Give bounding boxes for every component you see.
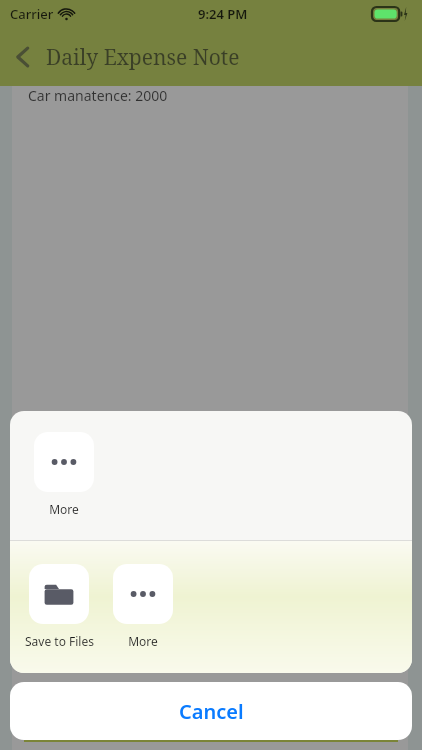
staticText: Daily Expense Note <box>46 43 240 72</box>
button[interactable]: More <box>104 564 182 649</box>
button[interactable]: More <box>25 432 103 517</box>
button[interactable]: Edit <box>24 700 398 742</box>
staticText: Save to Files <box>25 633 94 649</box>
button[interactable]: Save to Files <box>20 564 98 649</box>
staticText: Carrier <box>10 5 54 23</box>
staticText: Cancel <box>179 698 244 725</box>
button[interactable]: Cancel <box>10 682 412 740</box>
staticText: Edit <box>191 706 231 736</box>
staticText: 9:24 PM <box>198 5 248 23</box>
staticText: Car manatence: 2000 <box>28 86 168 105</box>
staticText: More <box>128 633 158 649</box>
staticText: More <box>49 501 79 517</box>
button[interactable]: Back <box>0 28 46 86</box>
